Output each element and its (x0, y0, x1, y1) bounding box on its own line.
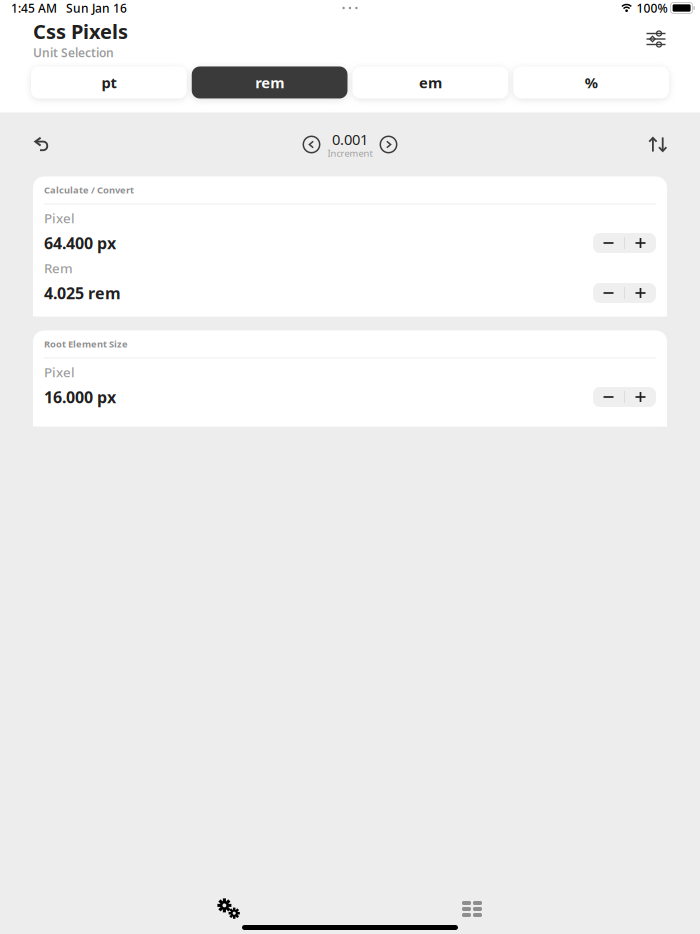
staticText: Unit Selection (33, 45, 114, 60)
button[interactable]: Grid view (449, 894, 495, 924)
staticText: em (419, 73, 442, 92)
button[interactable]: Decrease (593, 387, 624, 407)
button[interactable]: em (352, 66, 508, 98)
staticText: Css Pixels (33, 18, 128, 45)
staticText: 4.025 rem (44, 282, 121, 304)
button[interactable]: Increase (625, 233, 656, 253)
staticText: 64.400 px (44, 232, 116, 254)
staticText: 1:45 AM (11, 0, 57, 16)
staticText: rem (255, 73, 284, 92)
staticText: Increment (327, 147, 372, 159)
staticText: Rem (44, 259, 73, 277)
button[interactable]: rem (192, 66, 348, 98)
staticText: 0.001 (332, 130, 368, 149)
staticText: Sun Jan 16 (66, 0, 127, 16)
button[interactable]: Settings (646, 18, 667, 46)
button[interactable]: Decrease increment (302, 135, 320, 153)
button[interactable]: Swap units (643, 129, 673, 159)
button[interactable]: Undo (27, 129, 57, 159)
staticText: Pixel (44, 209, 75, 227)
staticText: Calculate / Convert (44, 184, 134, 196)
button[interactable]: Settings (206, 894, 252, 924)
staticText: Pixel (44, 363, 75, 381)
button[interactable]: Increase (625, 283, 656, 303)
button[interactable]: Increase increment (379, 135, 397, 153)
staticText: Root Element Size (44, 338, 128, 350)
staticText: 16.000 px (44, 386, 116, 408)
button[interactable]: Decrease (593, 233, 624, 253)
staticText: % (585, 73, 598, 92)
button[interactable]: pt (31, 66, 187, 98)
button[interactable]: Increase (625, 387, 656, 407)
staticText: 100% (637, 0, 668, 16)
button[interactable]: Decrease (593, 283, 624, 303)
button[interactable]: % (513, 66, 669, 98)
staticText: pt (101, 73, 116, 92)
